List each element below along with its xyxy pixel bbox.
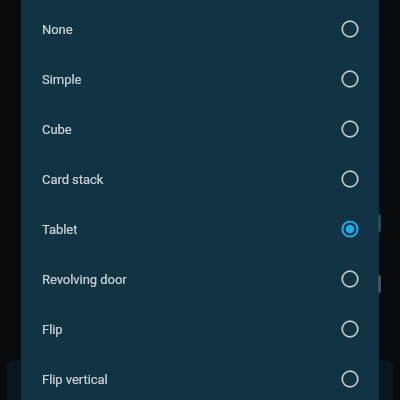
other: Not selected: [340, 269, 360, 289]
button[interactable]: Cube: [21, 104, 379, 154]
other: Selected: [340, 219, 360, 239]
staticText: None: [42, 22, 73, 37]
other: Not selected: [340, 19, 360, 39]
button[interactable]: Revolving door: [21, 254, 379, 304]
other: Scroll position: [378, 214, 381, 232]
staticText: Tablet: [42, 222, 78, 237]
staticText: Card stack: [42, 172, 104, 187]
button[interactable]: None: [21, 4, 379, 54]
other: Scrollbar: [378, 275, 381, 293]
button[interactable]: Simple: [21, 54, 379, 104]
button[interactable]: Tablet: [21, 204, 379, 254]
other: Not selected: [340, 69, 360, 89]
other: Not selected: [340, 319, 360, 339]
button[interactable]: Flip: [21, 304, 379, 354]
staticText: Flip: [42, 322, 63, 337]
other: Not selected: [340, 119, 360, 139]
staticText: Simple: [42, 72, 82, 87]
staticText: Revolving door: [42, 272, 127, 287]
staticText: Flip vertical: [42, 372, 108, 387]
button[interactable]: Flip vertical: [21, 354, 379, 400]
staticText: Cube: [42, 122, 72, 137]
other: Not selected: [340, 369, 360, 389]
button[interactable]: Card stack: [21, 154, 379, 204]
other: Not selected: [340, 169, 360, 189]
